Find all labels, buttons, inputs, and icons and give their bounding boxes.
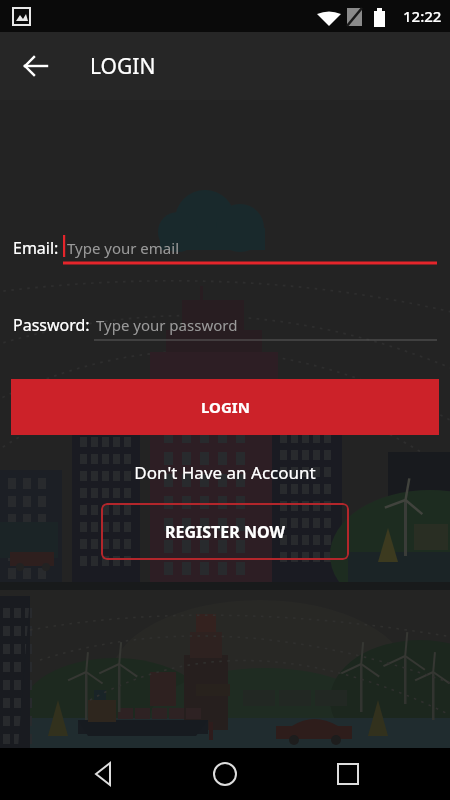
- button[interactable]: REGISTER NOW: [101, 503, 349, 560]
- staticText: Password:: [13, 314, 90, 336]
- staticText: LOGIN: [201, 397, 250, 417]
- button[interactable]: Email:: [13, 233, 437, 263]
- staticText: 12:22: [403, 6, 442, 26]
- staticText: LOGIN: [90, 52, 156, 81]
- staticText: Type your email: [67, 238, 180, 258]
- staticText: Don't Have an Account: [0, 461, 450, 484]
- button[interactable]: Password:: [13, 310, 437, 340]
- staticText: REGISTER NOW: [165, 521, 285, 543]
- button[interactable]: Recents: [300, 748, 450, 800]
- button[interactable]: Back: [0, 748, 150, 800]
- button[interactable]: Back: [12, 42, 60, 90]
- button[interactable]: LOGIN: [11, 379, 439, 435]
- staticText: Email:: [13, 237, 59, 259]
- staticText: Type your password: [96, 315, 238, 335]
- button[interactable]: Home: [150, 748, 300, 800]
